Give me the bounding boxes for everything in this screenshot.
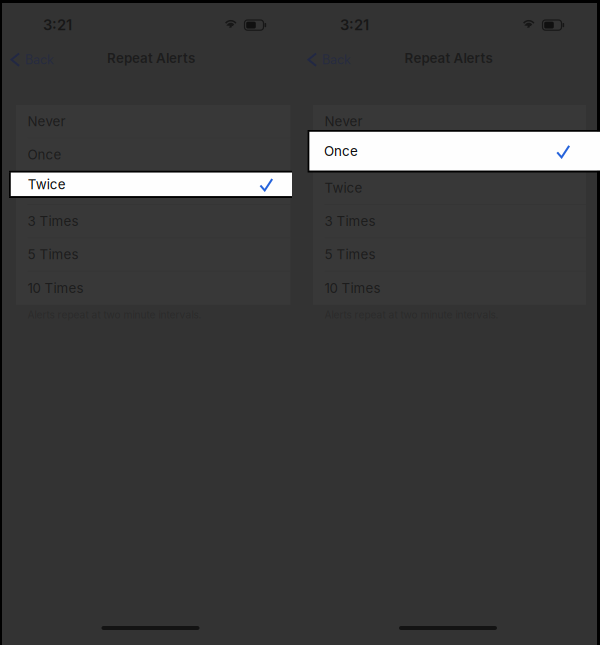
- staticText: Back: [25, 52, 54, 67]
- staticText: 10 Times: [324, 280, 380, 296]
- button[interactable]: Back: [305, 48, 359, 71]
- button[interactable]: Once: [308, 130, 600, 172]
- staticText: 5 Times: [27, 246, 78, 262]
- button[interactable]: Twice: [9, 171, 292, 198]
- staticText: Twice: [324, 180, 362, 196]
- staticText: Once: [324, 143, 358, 159]
- staticText: 5 Times: [324, 246, 375, 262]
- staticText: 3:21: [43, 16, 72, 34]
- staticText: Twice: [28, 176, 66, 192]
- staticText: 3 Times: [324, 213, 375, 229]
- button[interactable]: 10 Times: [16, 271, 290, 305]
- staticText: Once: [324, 146, 358, 163]
- staticText: Repeat Alerts: [107, 50, 195, 66]
- button[interactable]: Never: [313, 105, 586, 138]
- button[interactable]: 10 Times: [313, 271, 586, 305]
- staticText: Never: [27, 113, 65, 129]
- button[interactable]: Twice: [16, 172, 290, 205]
- button[interactable]: Twice: [313, 172, 586, 205]
- staticText: Never: [324, 113, 362, 129]
- button[interactable]: Back: [8, 48, 62, 71]
- button[interactable]: Once: [313, 138, 586, 172]
- staticText: 3 Times: [27, 213, 78, 229]
- staticText: 3:21: [340, 16, 369, 34]
- staticText: Once: [27, 146, 61, 163]
- staticText: 10 Times: [27, 280, 83, 296]
- button[interactable]: Once: [16, 138, 290, 172]
- staticText: Repeat Alerts: [404, 50, 492, 66]
- staticText: Back: [322, 52, 351, 67]
- staticText: Twice: [27, 180, 65, 196]
